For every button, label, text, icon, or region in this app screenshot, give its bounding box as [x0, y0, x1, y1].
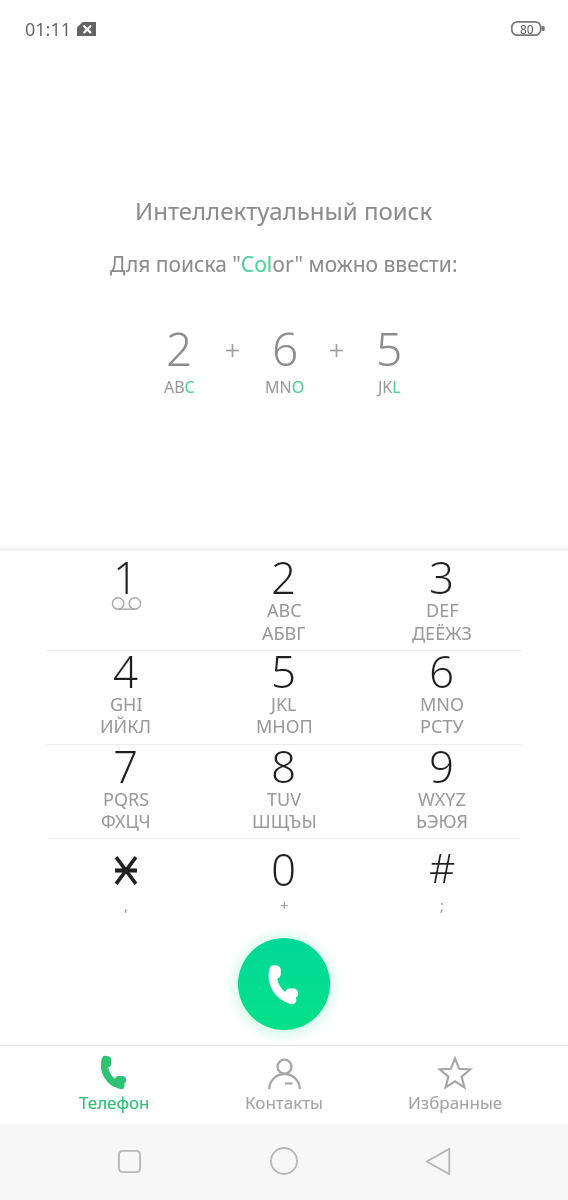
staticText: TUV	[267, 787, 301, 812]
staticText: ДЕЁЖЗ	[412, 621, 472, 646]
button[interactable]: 1	[47, 551, 205, 650]
staticText: МНОП	[256, 714, 313, 739]
staticText: JKL	[271, 692, 297, 717]
button[interactable]: 2	[205, 551, 363, 650]
staticText: Контакты	[245, 1091, 324, 1114]
button[interactable]: 6	[363, 651, 521, 744]
button[interactable]: Back	[414, 1137, 462, 1185]
staticText: 7	[113, 736, 139, 796]
staticText: 01:11	[25, 17, 72, 42]
button[interactable]: #	[363, 839, 521, 932]
staticText: ;	[440, 895, 445, 915]
staticText: АБВГ	[262, 621, 306, 646]
staticText: WXYZ	[418, 787, 466, 812]
staticText: Избранные	[408, 1091, 503, 1114]
button[interactable]: Избранные	[370, 1046, 540, 1124]
staticText: ИЙКЛ	[100, 714, 152, 739]
staticText: ABC	[164, 376, 195, 398]
button[interactable]: Контакты	[199, 1046, 369, 1124]
staticText: ABC	[267, 598, 302, 623]
button[interactable]: 9	[363, 745, 521, 838]
staticText: +	[280, 895, 289, 915]
staticText: 1	[113, 547, 139, 607]
button[interactable]: Home	[260, 1137, 308, 1185]
staticText: Для поиска "Color" можно ввести:	[110, 250, 458, 279]
button[interactable]: 4	[47, 651, 205, 744]
button[interactable]: 8	[205, 745, 363, 838]
staticText: 80	[520, 21, 534, 36]
button[interactable]: Call	[238, 938, 330, 1030]
staticText: #	[429, 839, 456, 895]
staticText: ЬЭЮЯ	[416, 809, 469, 834]
button[interactable]: 5	[205, 651, 363, 744]
staticText: 8	[271, 736, 297, 796]
staticText: 2	[166, 317, 193, 380]
staticText: 6	[272, 317, 299, 380]
button[interactable]: ,	[47, 839, 205, 932]
staticText: 4	[113, 641, 139, 701]
staticText: 6	[429, 641, 455, 701]
button[interactable]: 3	[363, 551, 521, 650]
staticText: 0	[271, 839, 297, 899]
staticText: ШЩЪЫ	[252, 809, 317, 834]
staticText: Интеллектуальный поиск	[135, 194, 433, 227]
button[interactable]: 7	[47, 745, 205, 838]
button[interactable]: Телефон	[29, 1046, 199, 1124]
staticText: JKL	[378, 376, 401, 398]
staticText: DEF	[426, 598, 459, 623]
staticText: ФХЦЧ	[101, 809, 151, 834]
button[interactable]: Recents	[105, 1137, 153, 1185]
staticText: 5	[271, 641, 297, 701]
staticText: GHI	[110, 692, 143, 717]
staticText: MNO	[420, 692, 465, 717]
staticText: РСТУ	[420, 714, 464, 739]
button[interactable]: 0	[205, 839, 363, 932]
staticText: PQRS	[103, 787, 150, 812]
staticText: MNO	[265, 376, 305, 398]
staticText: 9	[429, 736, 455, 796]
staticText: 2	[271, 547, 297, 607]
staticText: Телефон	[79, 1091, 150, 1114]
staticText: 5	[376, 317, 403, 380]
staticText: ,	[124, 895, 129, 915]
staticText: 3	[429, 547, 455, 607]
